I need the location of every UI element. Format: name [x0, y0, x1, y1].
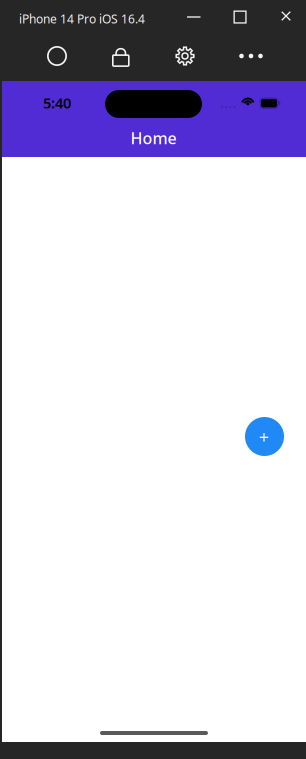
button[interactable]: Add	[245, 417, 284, 456]
button[interactable]: Settings	[167, 41, 203, 71]
button[interactable]: Maximize	[221, 3, 259, 31]
button[interactable]: Minimize	[175, 3, 213, 31]
button[interactable]: More options	[233, 41, 269, 71]
button[interactable]: Home	[39, 41, 75, 71]
button[interactable]: Close	[267, 2, 305, 30]
button[interactable]: Lock	[103, 41, 139, 71]
staticText: Home	[130, 127, 176, 149]
staticText: iPhone 14 Pro iOS 16.4	[19, 11, 145, 27]
staticText: 5:40	[43, 93, 71, 112]
